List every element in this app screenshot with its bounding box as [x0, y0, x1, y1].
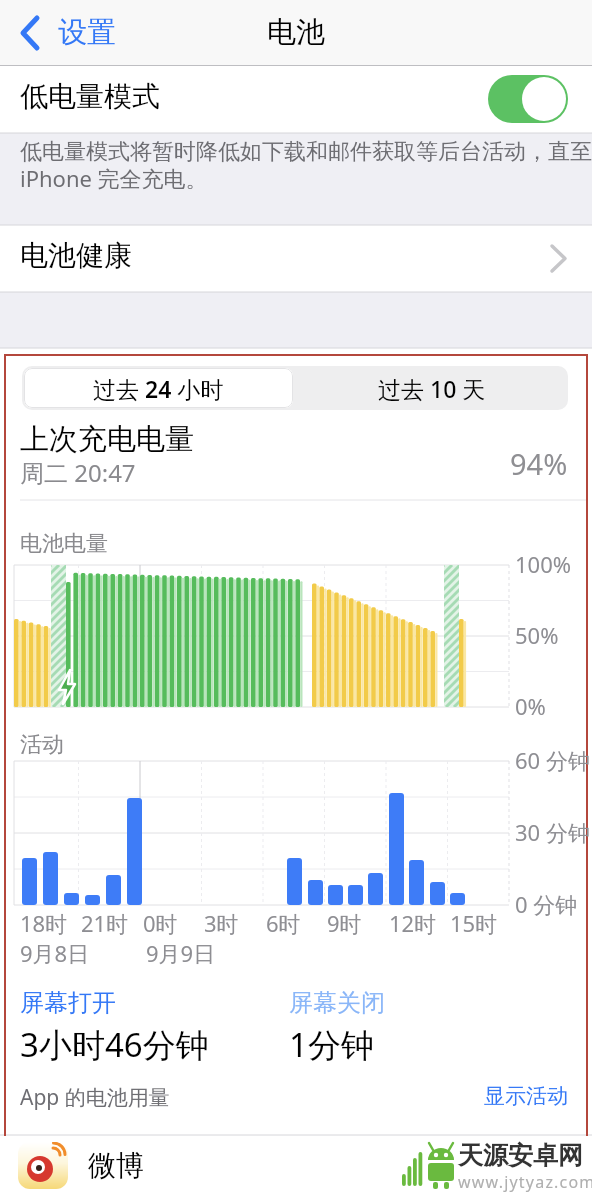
- staticText: 微博: [88, 1148, 144, 1183]
- button[interactable]: [0, 66, 592, 133]
- button[interactable]: 屏幕打开: [20, 988, 209, 1067]
- staticText: 活动: [20, 731, 64, 759]
- staticText: 3小时46分钟: [20, 1022, 209, 1067]
- staticText: 电池电量: [20, 530, 108, 558]
- button[interactable]: 设置: [20, 14, 116, 51]
- staticText: 低电量模式: [20, 79, 160, 114]
- button[interactable]: 显示活动: [484, 1083, 568, 1109]
- staticText: 12时: [389, 908, 437, 938]
- button[interactable]: 过去 10 天: [295, 366, 568, 410]
- button[interactable]: 微博: [0, 1136, 592, 1194]
- staticText: 9月8日: [20, 938, 90, 968]
- staticText: 过去 24 小时: [93, 373, 224, 404]
- button[interactable]: [24, 368, 293, 408]
- staticText: 0%: [515, 691, 546, 721]
- staticText: 6时: [266, 908, 301, 938]
- staticText: 9时: [327, 908, 362, 938]
- staticText: 上次充电电量: [20, 421, 194, 458]
- staticText: 1分钟: [289, 1022, 374, 1067]
- staticText: 显示活动: [484, 1083, 568, 1109]
- staticText: App 的电池用量: [20, 1083, 170, 1112]
- staticText: 0时: [143, 908, 178, 938]
- staticText: 周二 20:47: [20, 456, 136, 489]
- button[interactable]: 屏幕关闭: [289, 988, 385, 1067]
- staticText: 屏幕打开: [20, 988, 116, 1018]
- staticText: 21时: [81, 908, 129, 938]
- button[interactable]: [488, 75, 568, 123]
- staticText: www.jytyaz.com: [458, 1171, 592, 1193]
- staticText: 0 分钟: [515, 889, 578, 919]
- staticText: 低电量模式将暂时降低如下载和邮件获取等后台活动，直至 iPhone 完全充电。: [20, 138, 592, 194]
- staticText: 15时: [450, 908, 498, 938]
- staticText: 100%: [515, 549, 572, 579]
- staticText: 94%: [510, 444, 568, 483]
- staticText: 18时: [20, 908, 68, 938]
- staticText: 过去 10 天: [378, 373, 486, 404]
- staticText: 3时: [204, 908, 239, 938]
- staticText: 50%: [515, 620, 559, 650]
- button[interactable]: [0, 225, 592, 292]
- button[interactable]: 过去 24 小时: [22, 366, 295, 410]
- staticText: 60 分钟: [515, 745, 590, 775]
- staticText: 屏幕关闭: [289, 988, 385, 1018]
- staticText: 天源安卓网: [458, 1140, 583, 1171]
- staticText: 设置: [58, 14, 116, 51]
- staticText: 9月9日: [146, 938, 216, 968]
- staticText: 电池健康: [20, 238, 132, 273]
- staticText: 电池: [267, 14, 325, 51]
- staticText: 30 分钟: [515, 817, 590, 847]
